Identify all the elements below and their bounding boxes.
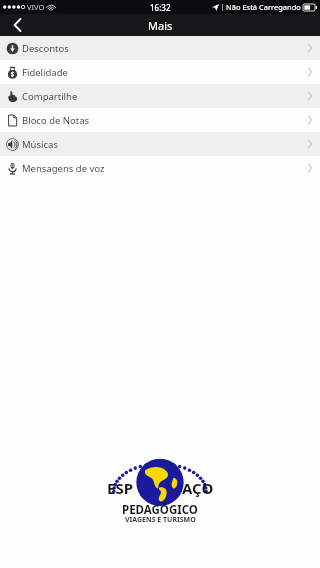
button[interactable]: Músicas xyxy=(0,132,320,156)
button[interactable]: Mensagens de voz xyxy=(0,156,320,180)
staticText: Não Está Carregando xyxy=(226,2,301,12)
staticText: 16:32 xyxy=(150,2,171,13)
staticText: PEDAGÓGICO xyxy=(122,502,198,518)
staticText: ESP xyxy=(107,478,133,498)
button[interactable]: Bloco de Notas xyxy=(0,108,320,132)
staticText: Mensagens de voz xyxy=(22,162,105,175)
button[interactable]: Descontos xyxy=(0,36,320,60)
button[interactable]: Compartilhe xyxy=(0,84,320,108)
staticText: Mais xyxy=(148,18,173,33)
staticText: VIVO xyxy=(27,2,45,12)
staticText: Fidelidade xyxy=(22,66,68,79)
staticText: AÇO xyxy=(182,478,214,498)
staticText: Compartilhe xyxy=(22,90,78,103)
button[interactable]: Fidelidade xyxy=(0,60,320,84)
staticText: Bloco de Notas xyxy=(22,114,90,127)
staticText: Músicas xyxy=(22,138,58,151)
staticText: VIAGENS E TURISMO xyxy=(125,515,196,525)
staticText: Descontos xyxy=(22,42,69,55)
button[interactable]: Voltar xyxy=(0,14,34,36)
